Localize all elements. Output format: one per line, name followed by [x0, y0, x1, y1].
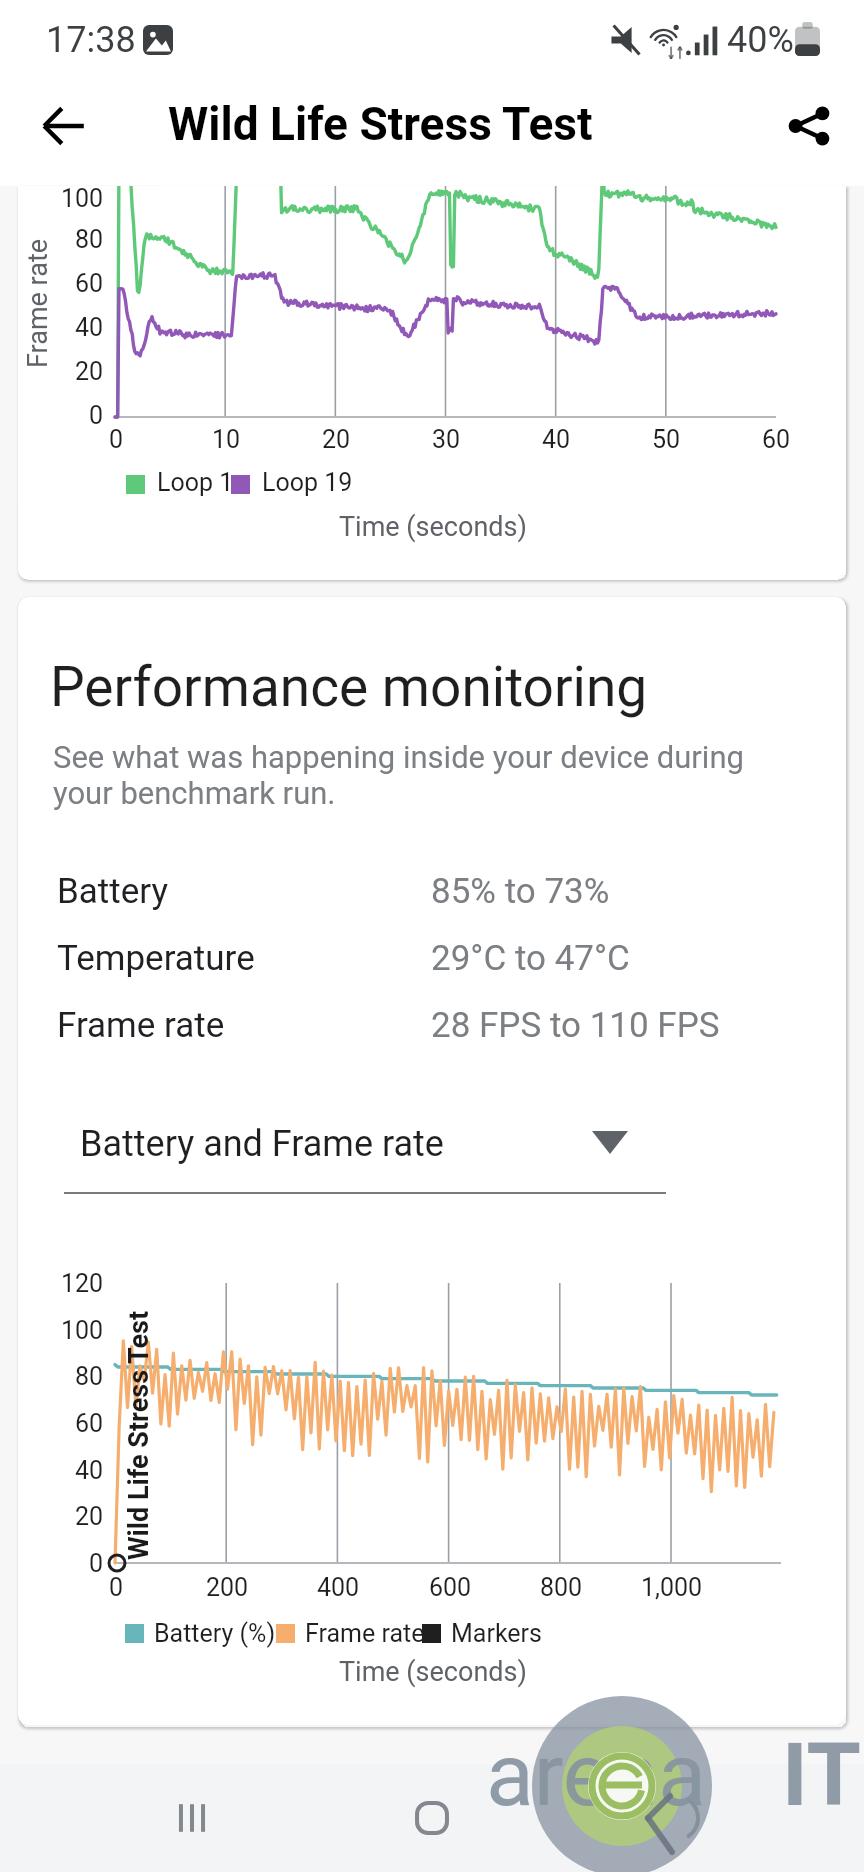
staticText: See what was happening inside your devic…: [53, 739, 744, 811]
staticText: 30: [432, 425, 461, 454]
staticText: 40: [542, 425, 571, 454]
button[interactable]: Home: [390, 1776, 474, 1860]
button[interactable]: Battery and Frame rate: [46, 1106, 666, 1206]
staticText: 10: [212, 425, 241, 454]
staticText: arena: [486, 1723, 706, 1826]
staticText: 100: [61, 1316, 104, 1345]
staticText: 0: [109, 425, 124, 454]
staticText: 80: [75, 1362, 104, 1391]
staticText: 40%: [727, 19, 794, 61]
staticText: 600: [429, 1573, 472, 1602]
staticText: Battery and Frame rate: [80, 1123, 444, 1165]
staticText: 1,000: [641, 1573, 703, 1602]
staticText: 800: [540, 1573, 583, 1602]
staticText: Markers: [451, 1619, 542, 1648]
button[interactable]: Recent apps: [150, 1776, 234, 1860]
staticText: 29°C to 47°C: [431, 938, 630, 979]
button[interactable]: Frame rate: [57, 997, 787, 1053]
staticText: Time (seconds): [339, 511, 527, 543]
button[interactable]: Back: [22, 84, 106, 168]
staticText: Frame rate: [305, 1619, 425, 1648]
staticText: Loop 19: [262, 468, 353, 497]
staticText: Time (seconds): [339, 1656, 527, 1688]
staticText: 85% to 73%: [431, 871, 610, 912]
staticText: 28 FPS to 110 FPS: [431, 1005, 720, 1046]
button[interactable]: Temperature: [57, 930, 787, 986]
staticText: 60: [75, 1409, 104, 1438]
staticText: 100: [61, 186, 104, 213]
staticText: 60: [75, 269, 104, 298]
staticText: IT: [782, 1723, 861, 1826]
staticText: Performance monitoring: [50, 655, 648, 719]
staticText: 0: [89, 401, 104, 430]
staticText: Frame rate: [57, 1005, 431, 1046]
staticText: 50: [652, 425, 681, 454]
staticText: 17:38: [46, 19, 136, 61]
staticText: Battery (%): [154, 1619, 276, 1648]
staticText: Loop 1: [157, 468, 234, 497]
staticText: 40: [75, 313, 104, 342]
staticText: Wild Life Stress Test: [123, 1310, 155, 1560]
staticText: 200: [206, 1573, 249, 1602]
staticText: 400: [317, 1573, 360, 1602]
staticText: 40: [75, 1456, 104, 1485]
staticText: 0: [109, 1573, 124, 1602]
staticText: 20: [75, 357, 104, 386]
button[interactable]: Back: [630, 1776, 714, 1860]
button[interactable]: Battery: [57, 863, 787, 919]
staticText: 120: [61, 1269, 104, 1298]
staticText: Temperature: [57, 938, 431, 979]
staticText: 20: [75, 1502, 104, 1531]
staticText: 20: [322, 425, 351, 454]
staticText: Wild Life Stress Test: [168, 97, 593, 151]
staticText: 80: [75, 225, 104, 254]
staticText: Battery: [57, 871, 431, 912]
staticText: 60: [762, 425, 791, 454]
staticText: 0: [89, 1549, 104, 1578]
button[interactable]: Share: [767, 84, 851, 168]
staticText: Frame rate: [22, 238, 54, 368]
